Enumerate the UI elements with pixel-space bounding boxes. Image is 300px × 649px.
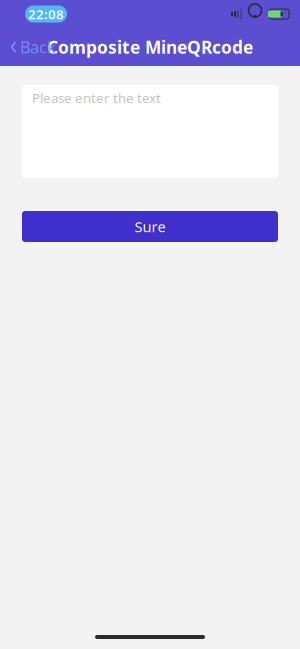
staticText: Back (20, 36, 56, 58)
staticText: 22:08 (28, 5, 64, 23)
button[interactable]: Back (0, 28, 66, 66)
staticText: Please enter the text (32, 89, 161, 107)
staticText: Sure (134, 217, 165, 236)
staticText: Composite MineQRcode (47, 35, 253, 58)
button[interactable]: Sure (22, 211, 278, 242)
